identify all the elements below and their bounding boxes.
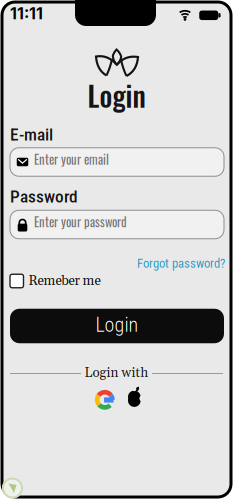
button[interactable]: Enter your email bbox=[10, 148, 224, 176]
staticText: Login bbox=[87, 74, 145, 116]
staticText: E-mail bbox=[10, 124, 53, 145]
button[interactable] bbox=[125, 386, 143, 410]
button[interactable]: Forgot password? bbox=[12, 256, 225, 271]
staticText: Enter your email bbox=[34, 150, 109, 168]
staticText: Enter your password bbox=[34, 212, 127, 231]
staticText: Login with bbox=[84, 365, 148, 382]
staticText: Login bbox=[95, 313, 138, 337]
staticText: Password bbox=[10, 186, 78, 207]
staticText: 11:11 bbox=[10, 4, 43, 23]
button[interactable]: Enter your password bbox=[10, 210, 224, 239]
staticText: Remeber me bbox=[28, 272, 100, 289]
staticText: Forgot password? bbox=[137, 256, 225, 271]
button[interactable] bbox=[94, 389, 116, 411]
button[interactable]: Remeber me bbox=[10, 274, 125, 288]
button[interactable]: Login bbox=[10, 309, 224, 343]
